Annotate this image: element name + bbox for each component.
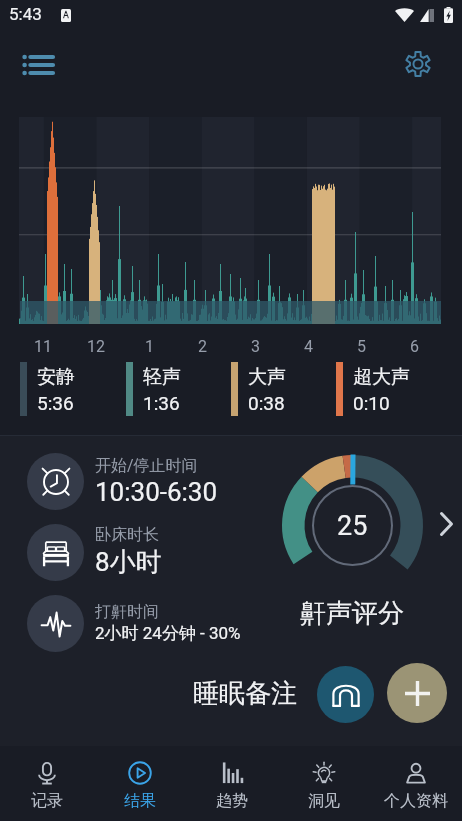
staticText: 5 [357, 337, 366, 356]
staticText: 2小时 24分钟 - 30% [95, 623, 241, 644]
staticText: 11 [34, 337, 52, 356]
button[interactable]: Settings [397, 43, 439, 85]
button[interactable]: Next [430, 508, 462, 540]
staticText: 10:30-6:30 [95, 477, 218, 507]
staticText: 大声 [248, 365, 286, 389]
staticText: 0:10 [353, 392, 390, 414]
staticText: 睡眠备注 [193, 677, 297, 710]
staticText: 0:38 [248, 392, 285, 414]
button[interactable]: 大声 [231, 362, 336, 416]
button[interactable]: 打鼾时间 [0, 593, 270, 653]
button[interactable]: Add note [387, 663, 447, 723]
staticText: 12 [87, 337, 105, 356]
staticText: 打鼾时间 [95, 602, 159, 622]
button[interactable]: 开始/停止时间 [0, 451, 270, 511]
button[interactable]: Menu list [16, 44, 58, 86]
staticText: 结果 [124, 791, 156, 811]
staticText: 鼾声评分 [300, 597, 404, 630]
staticText: 25 [337, 510, 368, 542]
staticText: 安静 [37, 365, 75, 389]
button[interactable]: 洞见 [278, 746, 370, 821]
button[interactable]: 个人资料 [370, 746, 462, 821]
staticText: 记录 [31, 791, 63, 811]
button[interactable]: 趋势 [186, 746, 278, 821]
staticText: 5:43 [9, 4, 42, 24]
staticText: 5:36 [37, 392, 74, 414]
staticText: 4 [304, 337, 313, 356]
staticText: 6 [410, 337, 419, 356]
staticText: 卧床时长 [95, 525, 159, 545]
button[interactable]: 记录 [0, 746, 93, 821]
staticText: 3 [251, 337, 260, 356]
button[interactable]: 安静 [20, 362, 125, 416]
staticText: 2 [198, 337, 207, 356]
staticText: 1 [145, 337, 154, 356]
staticText: 开始/停止时间 [95, 456, 198, 476]
button[interactable]: 超大声 [336, 362, 441, 416]
staticText: 1:36 [143, 392, 180, 414]
staticText: 个人资料 [384, 791, 448, 811]
button[interactable]: 卧床时长 [0, 522, 270, 582]
button[interactable]: 结果 [93, 746, 186, 821]
staticText: 超大声 [353, 365, 410, 389]
button[interactable]: 轻声 [126, 362, 231, 416]
staticText: 轻声 [143, 365, 181, 389]
staticText: A [63, 10, 69, 21]
button[interactable]: Sleep notes [317, 666, 374, 723]
staticText: 8小时 [95, 546, 162, 579]
staticText: 洞见 [308, 791, 340, 811]
staticText: 趋势 [216, 791, 248, 811]
